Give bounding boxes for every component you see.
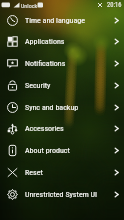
- button[interactable]: Unrestricted System UI: [0, 183, 124, 205]
- staticText: Accessories: [25, 124, 108, 133]
- button[interactable]: Applications: [0, 30, 124, 52]
- button[interactable]: About product: [0, 139, 124, 161]
- button[interactable]: Sync and backup: [0, 96, 124, 118]
- staticText: Notifications: [25, 59, 108, 68]
- staticText: Unlock: [21, 2, 38, 9]
- button[interactable]: Security: [0, 74, 124, 96]
- staticText: Sync and backup: [25, 103, 108, 112]
- staticText: Unrestricted System UI: [25, 190, 108, 199]
- staticText: Reset: [25, 168, 108, 177]
- button[interactable]: Accessories: [0, 117, 124, 139]
- staticText: Security: [25, 81, 108, 90]
- button[interactable]: Time and language: [0, 9, 124, 31]
- button[interactable]: Reset: [0, 161, 124, 183]
- staticText: 20:16: [107, 1, 122, 9]
- button[interactable]: Notifications: [0, 52, 124, 74]
- staticText: Time and language: [25, 16, 108, 25]
- staticText: About product: [25, 146, 108, 155]
- staticText: Applications: [25, 37, 108, 46]
